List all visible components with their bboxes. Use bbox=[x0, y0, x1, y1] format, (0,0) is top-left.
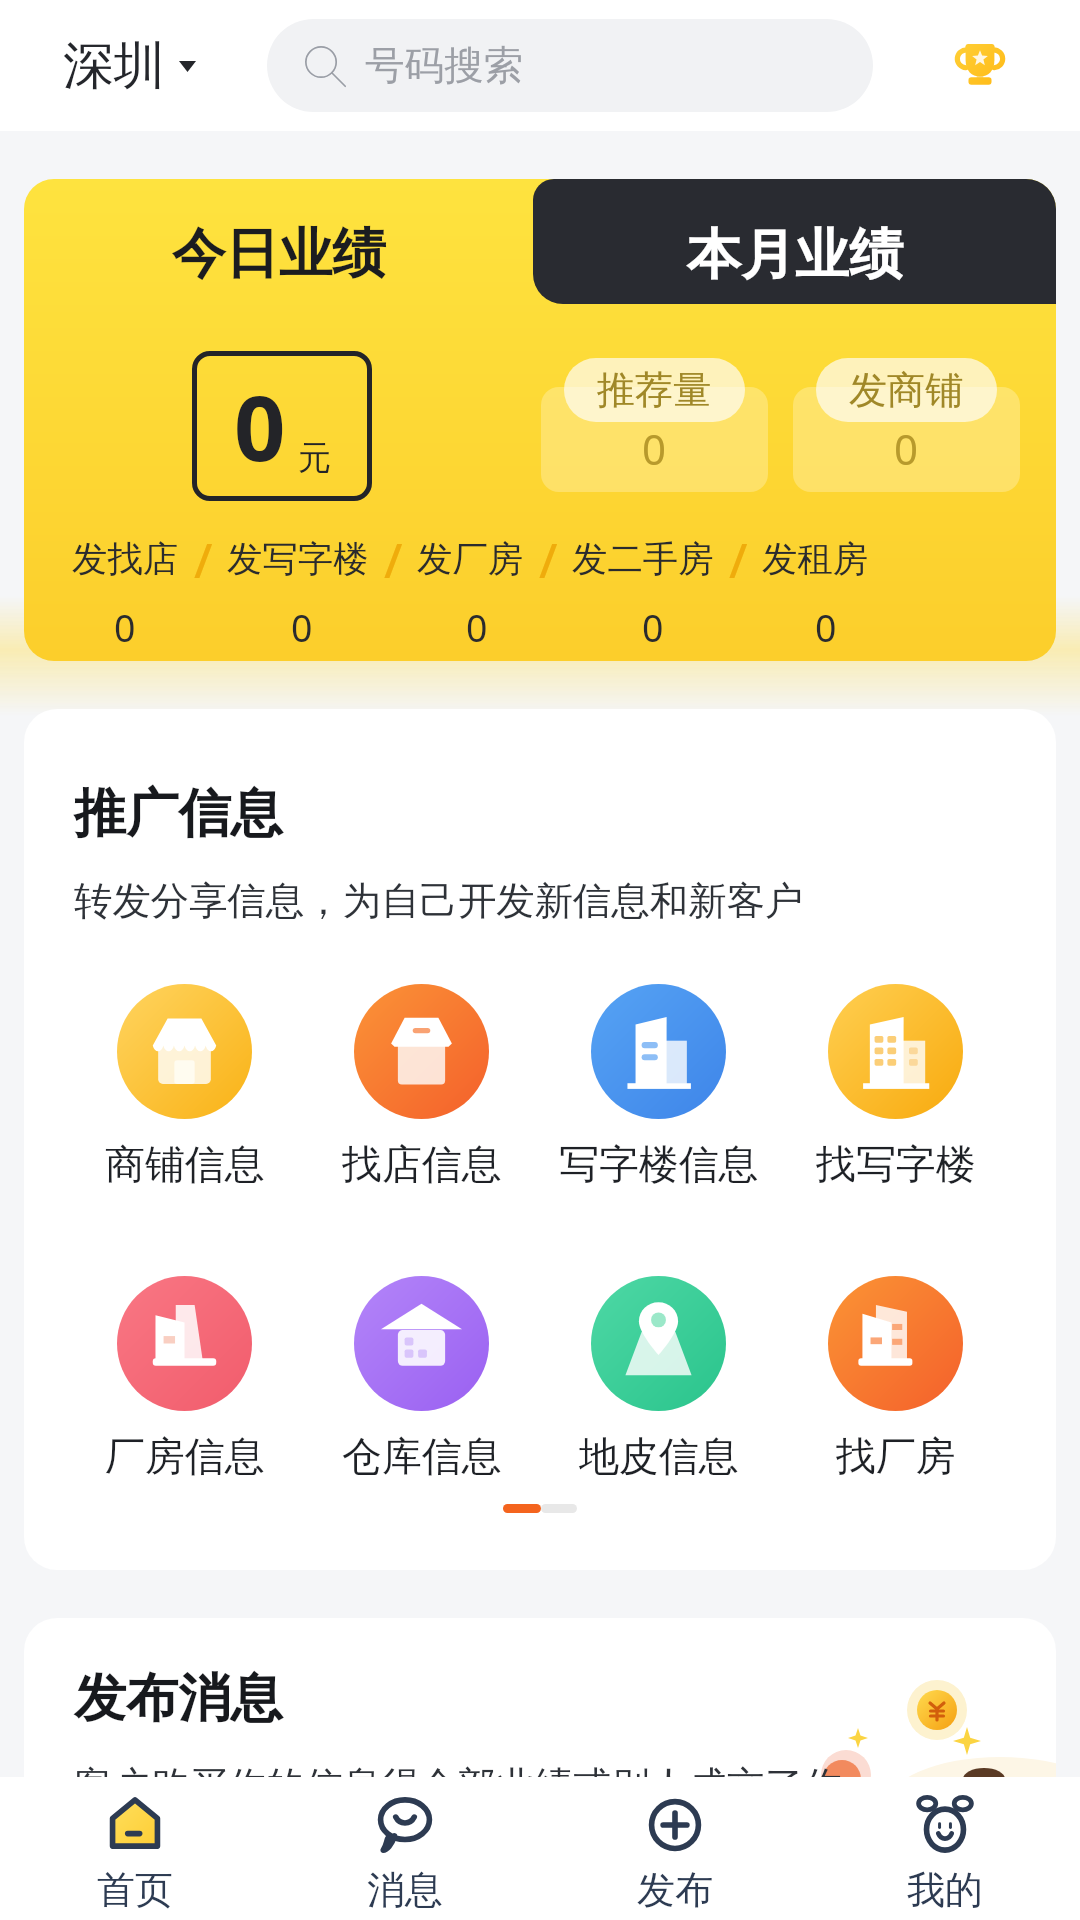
button[interactable]: 0 bbox=[541, 358, 768, 492]
staticText: 0 bbox=[642, 602, 664, 653]
button[interactable]: 消息 bbox=[270, 1777, 540, 1920]
staticText: / bbox=[539, 527, 558, 592]
button[interactable]: 发布消息 bbox=[24, 1618, 1056, 1920]
staticText: 地皮信息 bbox=[579, 1432, 739, 1482]
button[interactable]: 首页 bbox=[0, 1777, 270, 1920]
staticText: 我的 bbox=[907, 1866, 984, 1914]
staticText: 0 bbox=[114, 602, 136, 653]
button[interactable]: 写字楼信息 bbox=[540, 984, 777, 1190]
button[interactable]: 号码搜索 bbox=[267, 19, 873, 112]
staticText: 发写字楼 bbox=[227, 537, 369, 582]
staticText: 发布 bbox=[637, 1866, 714, 1914]
button[interactable]: 发厂房 bbox=[417, 537, 524, 582]
staticText: 写字楼信息 bbox=[559, 1140, 759, 1190]
staticText: 客户购买你的信息得全部业绩或别人成交了你 bbox=[74, 1762, 842, 1810]
staticText: 仓库信息 bbox=[342, 1432, 502, 1482]
staticText: / bbox=[194, 527, 213, 592]
staticText: 元 bbox=[298, 437, 331, 479]
button[interactable]: 第二页 bbox=[541, 1504, 577, 1513]
button[interactable]: 排行榜 bbox=[939, 25, 1020, 106]
staticText: 0 bbox=[291, 602, 313, 653]
staticText: 消息 bbox=[367, 1866, 444, 1914]
staticText: 0 bbox=[234, 365, 286, 488]
button[interactable]: 我的 bbox=[810, 1777, 1080, 1920]
button[interactable]: 找店信息 bbox=[303, 984, 540, 1190]
staticText: 转发分享信息，为自己开发新信息和新客户 bbox=[74, 877, 804, 925]
button[interactable]: 发二手房 bbox=[572, 537, 714, 582]
staticText: 深圳 bbox=[63, 34, 165, 98]
staticText: 0 bbox=[815, 602, 837, 653]
button[interactable]: 0 bbox=[793, 358, 1020, 492]
staticText: 推荐量 bbox=[597, 366, 712, 414]
button[interactable]: 发找店 bbox=[72, 537, 179, 582]
staticText: 发二手房 bbox=[572, 537, 714, 582]
staticText: 今日业绩 bbox=[172, 221, 386, 288]
staticText: 发租房 bbox=[762, 537, 869, 582]
staticText: 发商铺 bbox=[849, 366, 964, 414]
staticText: 0 bbox=[894, 420, 919, 477]
staticText: 0 bbox=[466, 602, 488, 653]
button[interactable]: 找写字楼 bbox=[777, 984, 1014, 1190]
button[interactable]: 深圳 bbox=[63, 34, 196, 98]
button[interactable]: 本月业绩 bbox=[533, 179, 1056, 304]
staticText: 发布消息 bbox=[74, 1666, 283, 1732]
button[interactable]: 地皮信息 bbox=[540, 1276, 777, 1482]
button[interactable]: 找厂房 bbox=[777, 1276, 1014, 1482]
button[interactable]: 发写字楼 bbox=[227, 537, 369, 582]
staticText: 首页 bbox=[97, 1866, 174, 1914]
staticText: 找店信息 bbox=[342, 1140, 502, 1190]
button[interactable]: 发布 bbox=[540, 1777, 810, 1920]
staticText: 商铺信息 bbox=[105, 1140, 265, 1190]
staticText: 找写字楼 bbox=[816, 1140, 976, 1190]
staticText: 发厂房 bbox=[417, 537, 524, 582]
staticText: 号码搜索 bbox=[365, 41, 524, 91]
button[interactable]: 商铺信息 bbox=[66, 984, 303, 1190]
button[interactable]: 发租房 bbox=[762, 537, 869, 582]
staticText: 厂房信息 bbox=[105, 1432, 265, 1482]
staticText: / bbox=[729, 527, 748, 592]
button[interactable]: 仓库信息 bbox=[303, 1276, 540, 1482]
button[interactable]: 今日业绩 bbox=[24, 179, 533, 304]
staticText: 本月业绩 bbox=[687, 221, 903, 289]
button[interactable]: 厂房信息 bbox=[66, 1276, 303, 1482]
staticText: 找厂房 bbox=[836, 1432, 956, 1482]
button[interactable]: 第一页 bbox=[503, 1504, 541, 1513]
staticText: 推广信息 bbox=[74, 781, 283, 847]
staticText: 发找店 bbox=[72, 537, 179, 582]
staticText: / bbox=[384, 527, 403, 592]
staticText: 0 bbox=[642, 420, 667, 477]
